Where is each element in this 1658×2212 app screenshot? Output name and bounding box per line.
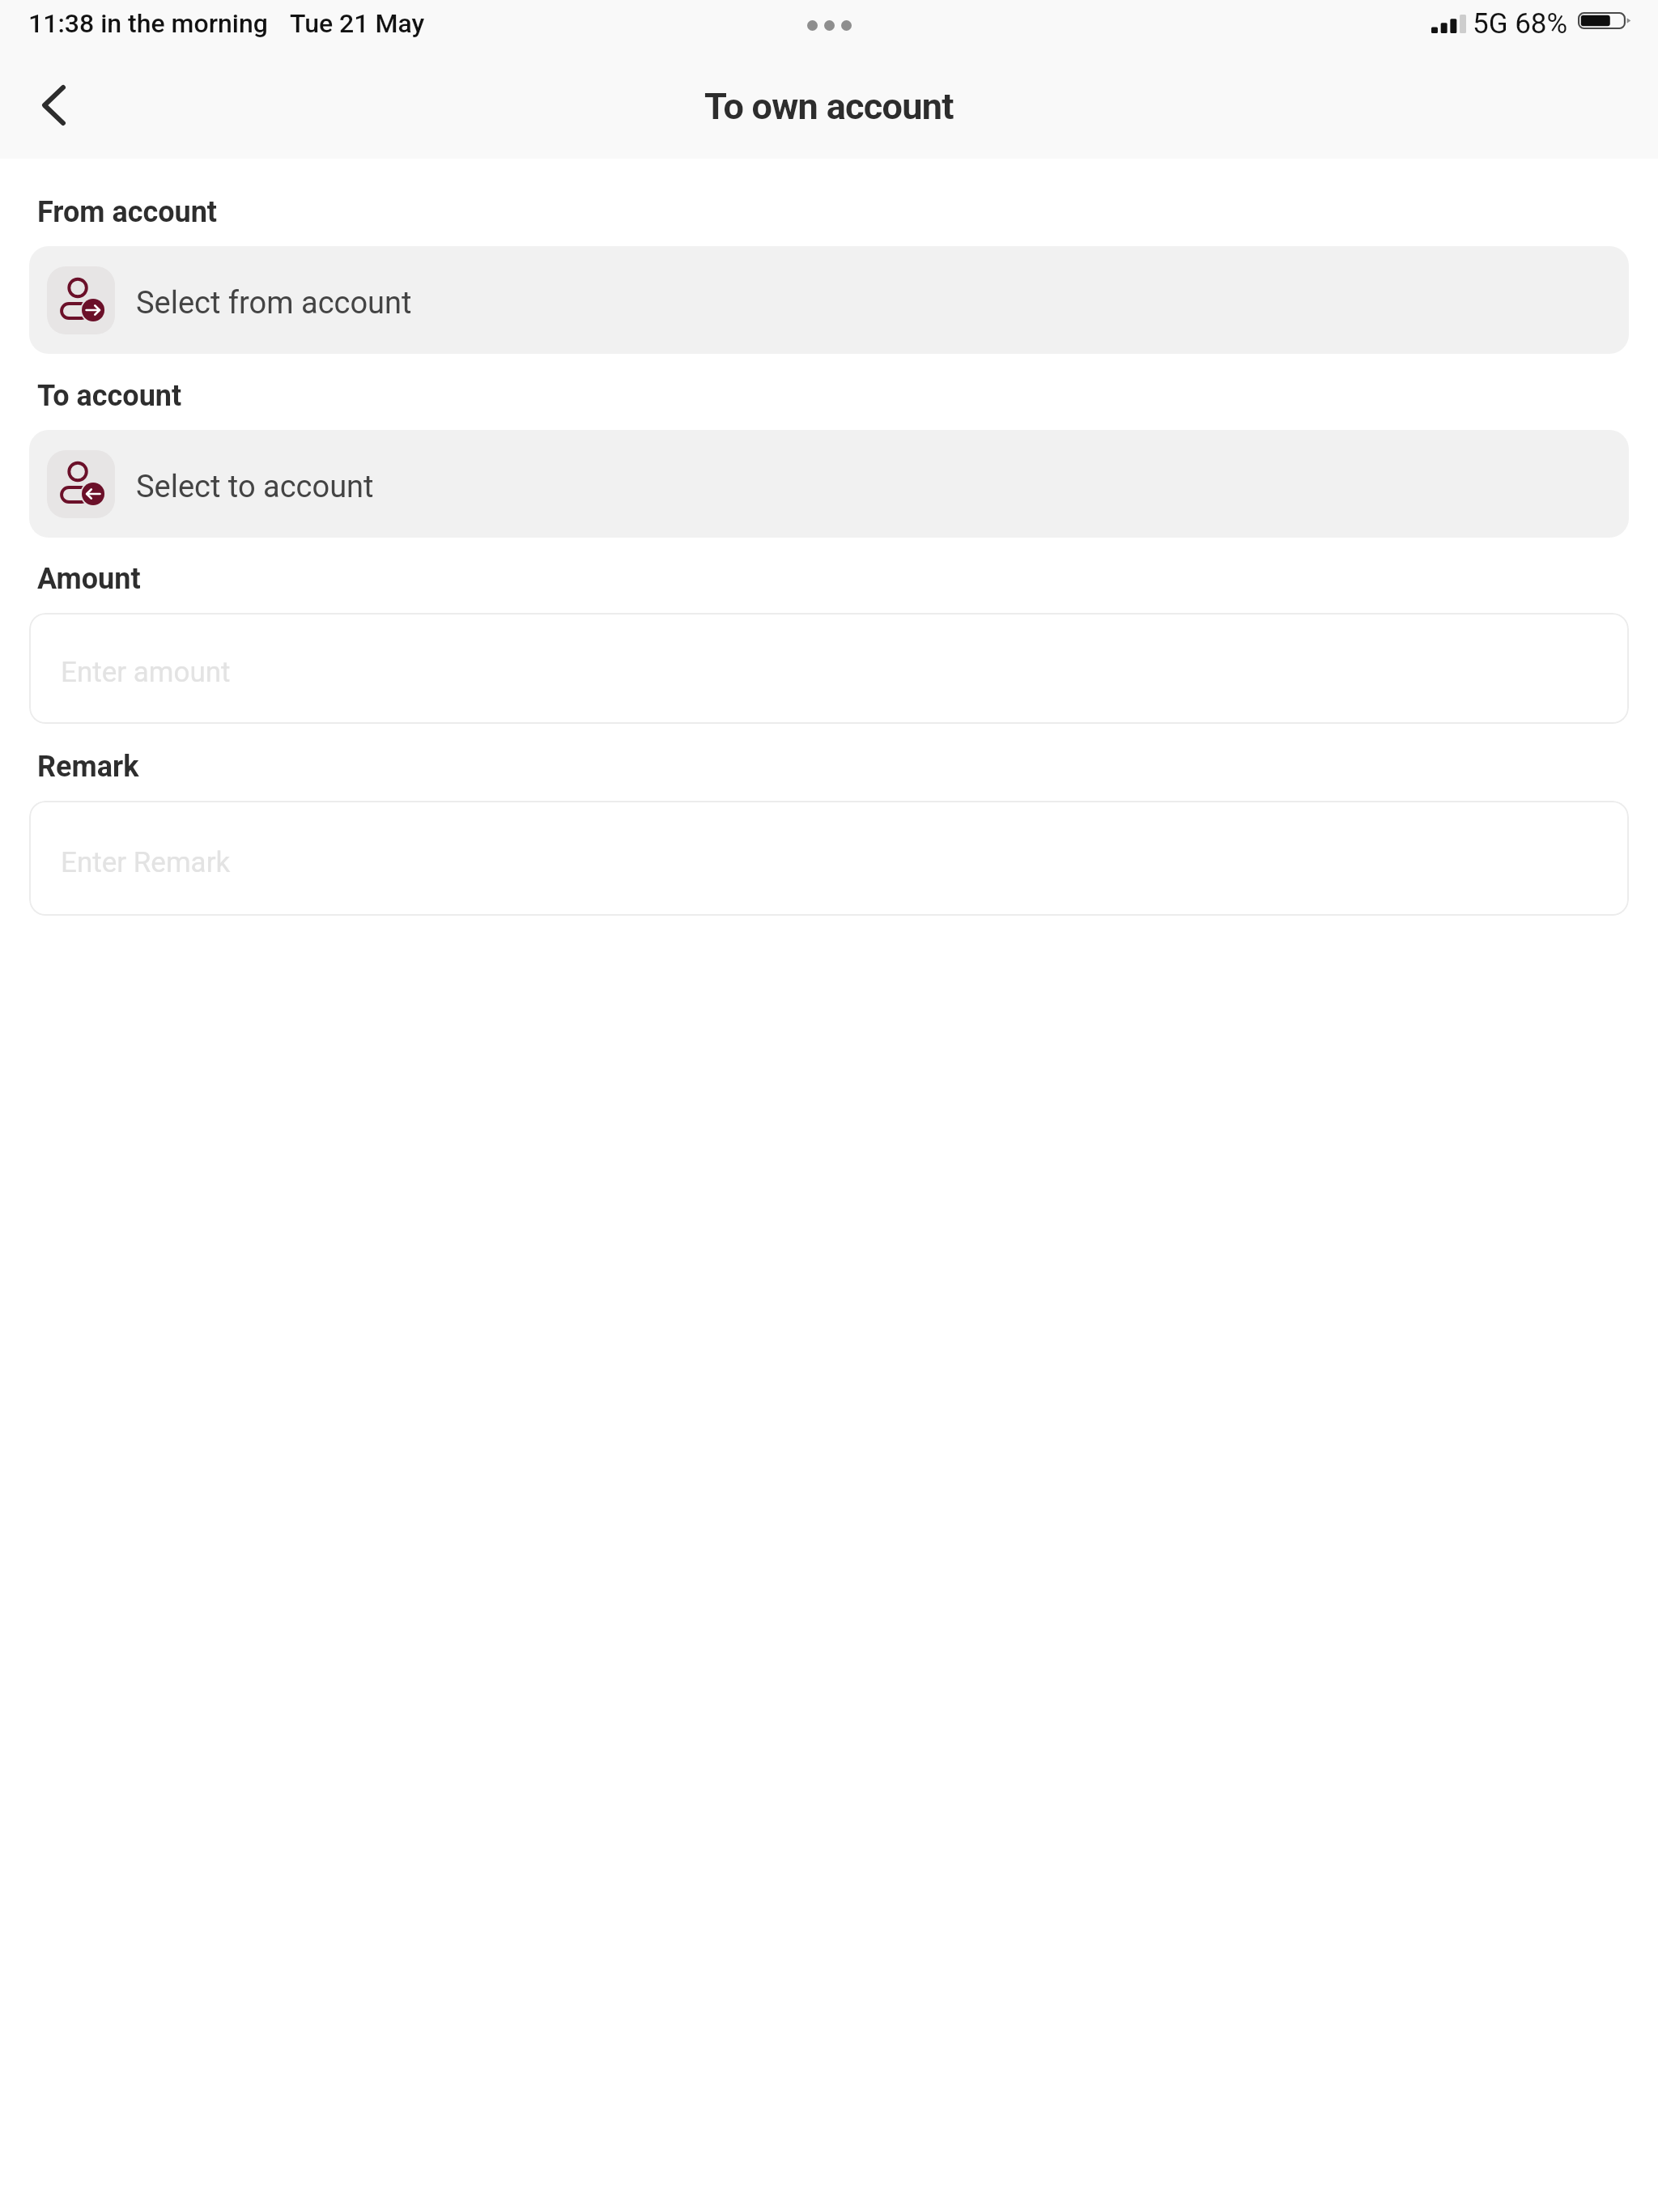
staticText: 11:38 in the morning (28, 8, 268, 39)
staticText: Remark (37, 750, 139, 784)
staticText: To own account (704, 85, 954, 128)
button[interactable]: Enter amount (29, 613, 1629, 724)
button[interactable]: Select from account (29, 246, 1629, 354)
button[interactable]: Back (12, 64, 95, 147)
staticText: Amount (37, 562, 141, 596)
button[interactable]: Enter Remark (29, 801, 1629, 916)
staticText: Enter Remark (61, 846, 231, 879)
staticText: To account (37, 379, 182, 413)
staticText: Enter amount (61, 656, 231, 689)
staticText: Select to account (136, 469, 374, 505)
button[interactable]: Select to account (29, 430, 1629, 538)
staticText: From account (37, 195, 218, 229)
staticText: Select from account (136, 285, 412, 321)
staticText: 5G 68% (1473, 7, 1568, 40)
staticText: Tue 21 May (290, 8, 425, 39)
